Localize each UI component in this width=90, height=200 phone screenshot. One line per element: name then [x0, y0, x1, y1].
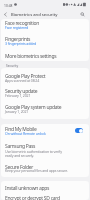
staticText: 10:48 [4, 3, 13, 7]
button[interactable]: Google Play Protect [1, 68, 89, 84]
staticText: Biometrics and security [11, 12, 58, 18]
staticText: February 1, 2021 [5, 93, 71, 98]
button[interactable]: Google Play system update [1, 100, 89, 119]
staticText: Google Play system update [5, 104, 67, 111]
button[interactable]: Back [0, 9, 11, 19]
staticText: Secure Folder [5, 164, 67, 171]
staticText: More biometrics settings [5, 53, 67, 60]
staticText: Find My Mobile [5, 126, 67, 133]
staticText: easily and securely. [5, 153, 71, 158]
button[interactable]: Find My Mobile toggle [75, 128, 83, 133]
staticText: Keep your personal files and apps secure… [5, 168, 71, 173]
button[interactable]: Encrypt or decrypt SD card [1, 194, 89, 200]
button[interactable]: Search [76, 9, 88, 19]
staticText: Use biometric authentication to verify [5, 149, 71, 154]
staticText: Google Play Protect [5, 73, 67, 80]
button[interactable]: Find My Mobile [1, 124, 89, 141]
button[interactable]: Fingerprints [1, 34, 89, 50]
staticText: Apps scanned at 08:24 [5, 78, 71, 83]
staticText: Security update [5, 88, 67, 95]
button[interactable]: Face recognition [1, 19, 89, 34]
button[interactable]: Install unknown apps [1, 181, 89, 194]
button[interactable]: Security update [1, 84, 89, 100]
staticText: Install unknown apps [5, 185, 67, 192]
staticText: January 1, 2021 [5, 109, 71, 114]
staticText: Security [6, 64, 19, 68]
staticText: Fingerprints [5, 36, 67, 43]
staticText: Face recognition [5, 20, 67, 27]
staticText: On without Remote unlock [5, 131, 71, 136]
staticText: 3 fingerprints added [5, 41, 71, 46]
staticText: Face registered [5, 25, 71, 30]
button[interactable]: More biometrics settings [1, 50, 89, 61]
button[interactable]: Samsung Pass [1, 141, 89, 161]
staticText: Encrypt or decrypt SD card [5, 195, 67, 200]
button[interactable]: Secure Folder [1, 161, 89, 177]
staticText: Samsung Pass [5, 143, 67, 150]
